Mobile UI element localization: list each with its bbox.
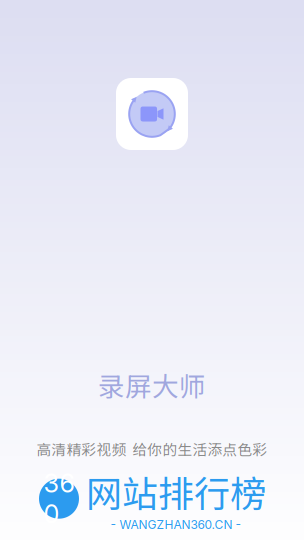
staticText: 录屏大师 [98, 365, 206, 404]
staticText: 高清精彩视频 给你的生活添点色彩 [36, 438, 267, 459]
staticText: - WANGZHAN360.CN - [110, 517, 241, 532]
staticText: 360 [43, 468, 74, 529]
staticText: 网站排行榜 [86, 465, 266, 517]
